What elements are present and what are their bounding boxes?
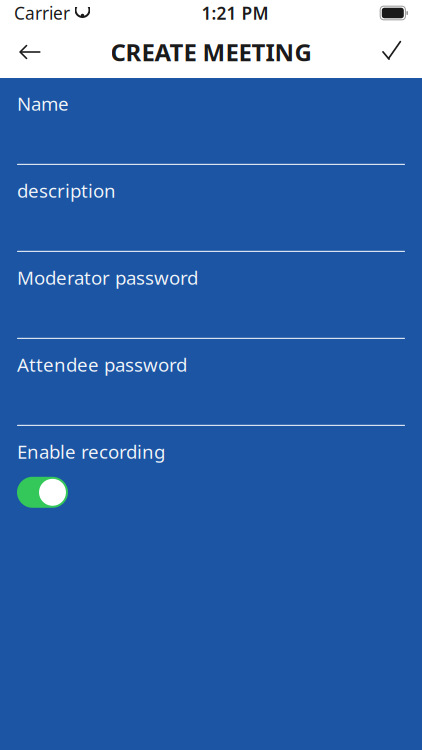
staticText: 1:21 PM [202,1,269,24]
staticText: Name [17,91,69,116]
staticText: Carrier [14,1,70,24]
staticText: CREATE MEETING [110,36,311,68]
staticText: Moderator password [17,265,198,290]
button[interactable]: Back [4,26,56,78]
staticText: description [17,178,116,203]
button[interactable]: Save meeting [366,26,418,78]
staticText: Enable recording [17,439,165,464]
staticText: Attendee password [17,352,187,377]
button[interactable]: Enable recording [17,477,68,508]
